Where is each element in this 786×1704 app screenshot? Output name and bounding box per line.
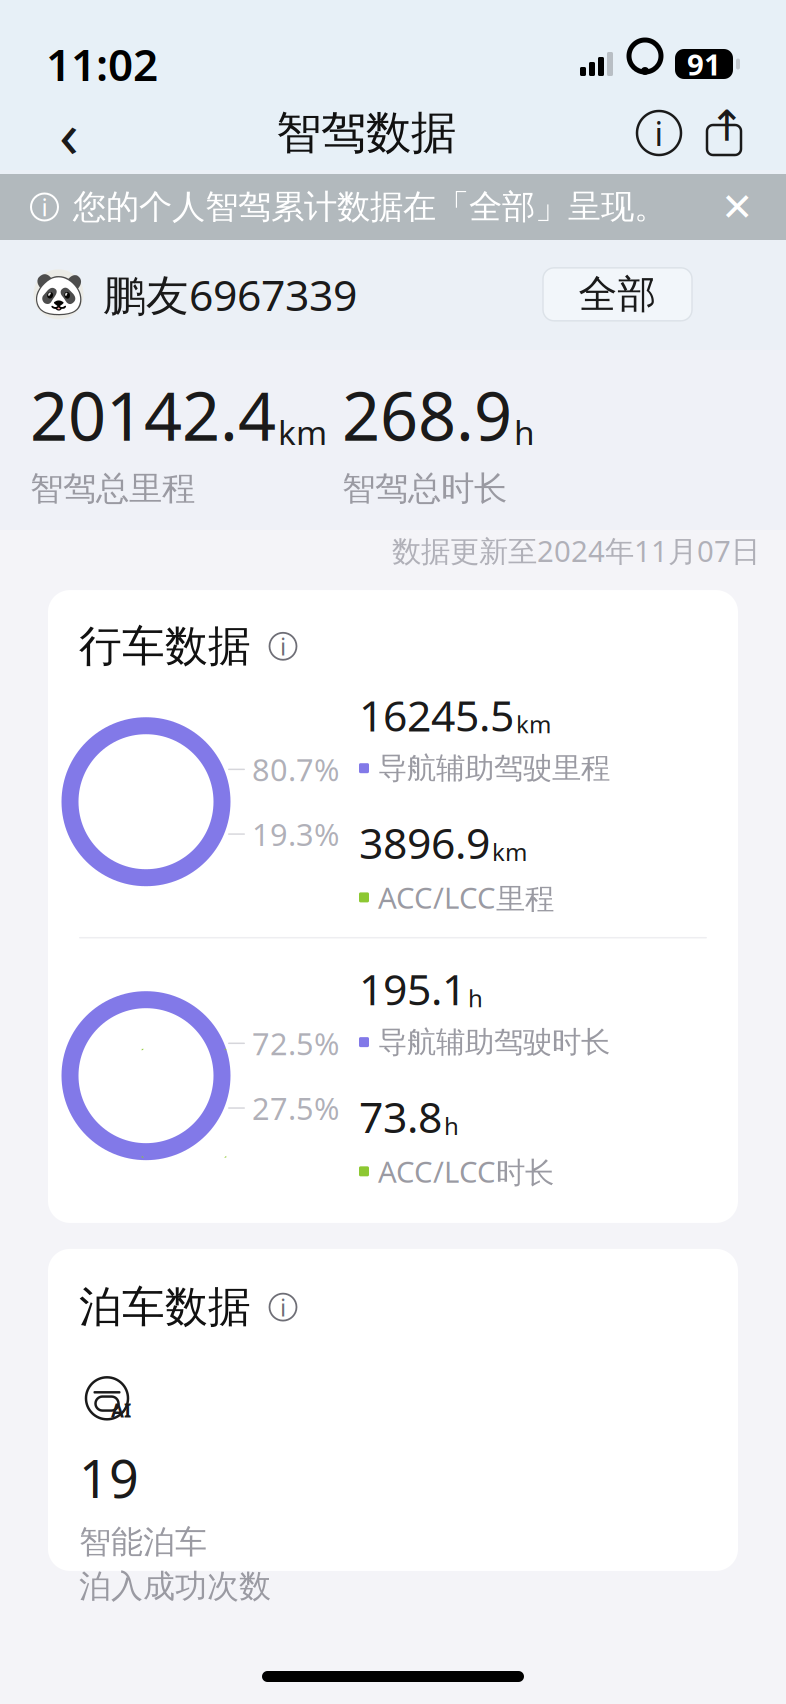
staticText: 19 xyxy=(79,1443,139,1512)
staticText: 91 xyxy=(687,44,721,83)
staticText: 全部 xyxy=(578,271,656,318)
staticText: 11:02 xyxy=(46,35,158,93)
staticText: 泊入成功次数 xyxy=(79,1567,271,1606)
staticText: i xyxy=(41,191,47,223)
staticText: 20142.4 xyxy=(30,371,276,459)
button[interactable]: Back xyxy=(32,96,106,170)
staticText: 智驾总时长 xyxy=(342,468,507,509)
staticText: 导航辅助驾驶里程 xyxy=(378,750,610,786)
staticText: 🐼 xyxy=(33,271,84,318)
staticText: ACC/LCC时长 xyxy=(378,1152,554,1191)
button[interactable]: Information xyxy=(626,100,692,166)
staticText: 3896.9 xyxy=(359,814,490,871)
staticText: 您的个人智驾累计数据在「全部」呈现。 xyxy=(73,186,667,227)
staticText: i xyxy=(280,630,286,662)
staticText: 智能泊车 xyxy=(79,1522,207,1562)
staticText: h xyxy=(514,410,535,454)
staticText: 19.3% xyxy=(252,814,339,854)
staticText: 27.5% xyxy=(252,1088,339,1128)
staticText: 73.8 xyxy=(359,1088,442,1145)
staticText: 268.9 xyxy=(342,371,512,459)
button[interactable]: 全部 xyxy=(543,268,692,321)
staticText: i xyxy=(280,1291,286,1323)
staticText: ACC/LCC里程 xyxy=(378,878,554,917)
staticText: 智驾数据 xyxy=(276,105,456,161)
staticText: 195.1 xyxy=(359,960,466,1017)
staticText: ↑ xyxy=(709,102,745,150)
staticText: 80.7% xyxy=(252,749,339,790)
staticText: km xyxy=(492,836,527,868)
staticText: 泊车数据 xyxy=(79,1281,251,1333)
button[interactable]: About 泊车数据 xyxy=(262,1286,304,1328)
button[interactable]: Share xyxy=(692,101,756,165)
staticText: km xyxy=(278,410,327,454)
staticText: h xyxy=(468,982,483,1014)
button[interactable]: About 行车数据 xyxy=(262,625,304,667)
staticText: ✕ xyxy=(721,185,753,229)
staticText: i xyxy=(654,111,663,155)
staticText: 数据更新至2024年11月07日 xyxy=(392,531,760,570)
staticText: 16245.5 xyxy=(359,686,514,743)
button[interactable]: Close notice xyxy=(710,180,764,234)
staticText: 智驾总里程 xyxy=(30,468,195,509)
staticText: h xyxy=(444,1110,459,1142)
staticText: 行车数据 xyxy=(79,620,251,672)
staticText: AI xyxy=(111,1398,131,1423)
button[interactable]: 🐼 xyxy=(33,266,357,323)
staticText: 72.5% xyxy=(252,1023,339,1064)
staticText: km xyxy=(516,708,551,740)
staticText: 导航辅助驾驶时长 xyxy=(378,1024,610,1060)
staticText: ‹ xyxy=(59,90,79,175)
staticText: 鹏友6967339 xyxy=(103,266,357,323)
